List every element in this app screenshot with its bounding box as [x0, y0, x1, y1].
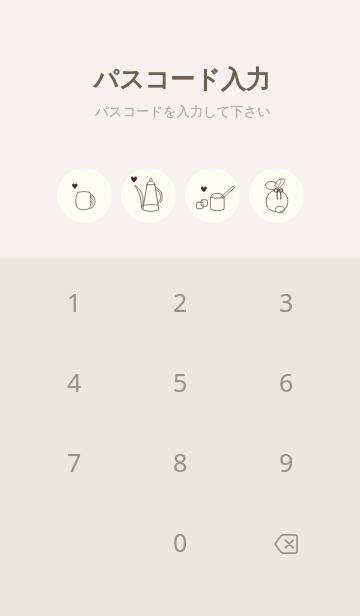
staticText: 6	[279, 365, 294, 399]
button[interactable]: 0	[127, 502, 233, 582]
staticText: 4	[67, 365, 82, 399]
staticText: 7	[67, 445, 82, 479]
button[interactable]: 5	[127, 342, 233, 422]
staticText: パスコード入力	[93, 64, 271, 95]
staticText: 5	[173, 365, 188, 399]
button[interactable]: 6	[233, 342, 339, 422]
staticText: パスコードを入力して下さい	[95, 103, 271, 120]
button[interactable]: 4	[21, 342, 127, 422]
button[interactable]: 9	[233, 422, 339, 502]
button[interactable]: 2	[127, 262, 233, 342]
staticText: 0	[173, 525, 188, 559]
button[interactable]: 8	[127, 422, 233, 502]
staticText: 8	[173, 445, 188, 479]
staticText: 1	[67, 285, 82, 319]
staticText: 3	[279, 285, 294, 319]
button[interactable]: 1	[21, 262, 127, 342]
other: Backspace	[266, 522, 306, 562]
staticText: 9	[279, 445, 294, 479]
button[interactable]: Backspace	[233, 502, 339, 582]
button[interactable]: 3	[233, 262, 339, 342]
button[interactable]: 7	[21, 422, 127, 502]
staticText: 2	[173, 285, 188, 319]
